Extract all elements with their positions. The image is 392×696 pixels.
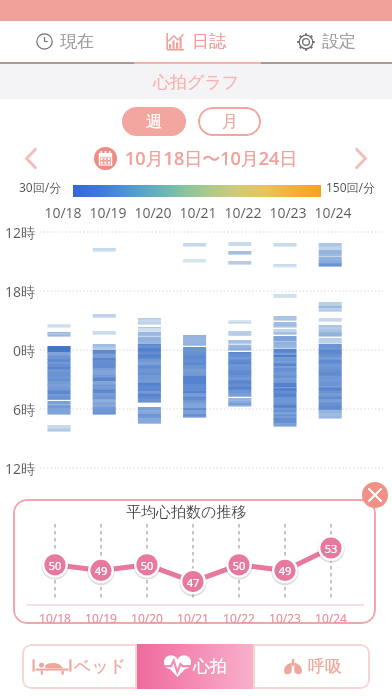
staticText: 設定 bbox=[322, 31, 356, 52]
button[interactable]: ベッド bbox=[22, 644, 137, 689]
staticText: 10/22 bbox=[216, 610, 262, 626]
staticText: 30回/分 bbox=[19, 179, 62, 195]
staticText: 10/24 bbox=[308, 203, 358, 222]
staticText: 10月18日〜10月24日 bbox=[125, 146, 298, 171]
button[interactable]: 月 bbox=[198, 107, 261, 136]
staticText: 10/19 bbox=[83, 203, 133, 222]
staticText: ベッド bbox=[74, 656, 127, 677]
staticText: 12時 bbox=[0, 459, 35, 478]
staticText: 呼吸 bbox=[308, 656, 342, 677]
staticText: 10/23 bbox=[263, 203, 313, 222]
staticText: 10/21 bbox=[173, 203, 223, 222]
staticText: 10/22 bbox=[218, 203, 268, 222]
staticText: 10/19 bbox=[78, 610, 124, 626]
staticText: 心拍 bbox=[193, 656, 227, 677]
button[interactable]: 現在 bbox=[0, 21, 130, 62]
button[interactable] bbox=[13, 499, 376, 624]
button[interactable]: 呼吸 bbox=[253, 644, 370, 689]
staticText: 10/20 bbox=[128, 203, 178, 222]
staticText: 日誌 bbox=[192, 31, 226, 52]
staticText: 50 bbox=[40, 558, 70, 573]
staticText: 50 bbox=[132, 558, 162, 573]
staticText: 月 bbox=[222, 112, 238, 132]
staticText: 47 bbox=[178, 575, 208, 590]
button[interactable]: 心拍 bbox=[137, 644, 253, 689]
staticText: 現在 bbox=[60, 31, 94, 52]
button[interactable]: Previous week bbox=[11, 141, 51, 175]
staticText: 18時 bbox=[0, 282, 35, 301]
staticText: 心拍グラフ bbox=[153, 72, 240, 93]
staticText: 49 bbox=[86, 563, 116, 578]
button[interactable]: 設定 bbox=[261, 21, 392, 62]
button[interactable]: Close bbox=[362, 482, 388, 508]
staticText: 6時 bbox=[0, 400, 35, 419]
staticText: 10/20 bbox=[124, 610, 170, 626]
staticText: 49 bbox=[270, 563, 300, 578]
button[interactable]: 日誌 bbox=[130, 21, 261, 62]
staticText: 10/18 bbox=[32, 610, 78, 626]
staticText: 12時 bbox=[0, 223, 35, 242]
staticText: 10/24 bbox=[308, 610, 354, 626]
staticText: 10/21 bbox=[170, 610, 216, 626]
staticText: 150回/分 bbox=[326, 179, 376, 195]
button[interactable]: Next week bbox=[341, 141, 381, 175]
button[interactable]: 週 bbox=[122, 107, 186, 136]
staticText: 10/23 bbox=[262, 610, 308, 626]
staticText: 0時 bbox=[0, 341, 35, 360]
staticText: 53 bbox=[316, 541, 346, 556]
staticText: 50 bbox=[224, 558, 254, 573]
staticText: 週 bbox=[146, 112, 162, 132]
staticText: 10/18 bbox=[38, 203, 88, 222]
staticText: 平均心拍数の推移 bbox=[126, 503, 247, 522]
